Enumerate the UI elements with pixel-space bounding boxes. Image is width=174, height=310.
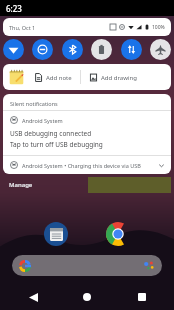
staticText: Add note — [46, 74, 72, 82]
staticText: Android System — [22, 117, 63, 124]
button[interactable]: Wi-Fi — [3, 39, 24, 60]
staticText: Add drawing — [101, 74, 137, 82]
button[interactable]: Home — [65, 284, 109, 310]
staticText: Manage — [9, 181, 33, 189]
button[interactable]: Messages — [44, 222, 68, 246]
button[interactable] — [12, 255, 162, 276]
button[interactable]: Android System — [3, 111, 171, 155]
button[interactable]: Manage — [3, 179, 39, 191]
button[interactable]: Add note — [32, 70, 74, 85]
button[interactable]: Battery Saver — [91, 39, 112, 60]
button[interactable]: Mobile data — [121, 39, 142, 60]
button[interactable]: Recents — [120, 284, 164, 310]
staticText: Silent notifications — [10, 100, 58, 107]
button[interactable]: Back — [11, 284, 55, 310]
button[interactable]: Chrome — [106, 222, 130, 246]
staticText: 100% — [152, 24, 165, 31]
staticText: Tap to turn off USB debugging — [10, 140, 103, 149]
staticText: Thu, Oct 1 — [9, 24, 36, 31]
button[interactable]: Do not disturb — [32, 39, 53, 60]
button[interactable]: Airplane mode — [150, 39, 171, 60]
button[interactable]: Android System • Charging this device vi… — [3, 156, 171, 174]
staticText: USB debugging connected — [10, 129, 92, 138]
staticText: Android System • Charging this device vi… — [22, 162, 141, 169]
staticText: 6:23 — [6, 3, 22, 14]
button[interactable]: Bluetooth — [62, 39, 83, 60]
button[interactable]: Add drawing — [87, 70, 139, 85]
